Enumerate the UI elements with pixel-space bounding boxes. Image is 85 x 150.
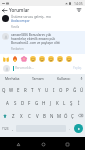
button[interactable]: U [43, 83, 50, 96]
button[interactable]: İ [75, 96, 82, 109]
button[interactable]: L [61, 96, 68, 109]
button[interactable]: Merhaba [0, 74, 25, 83]
button[interactable]: Q [0, 83, 8, 96]
staticText: Z [12, 113, 15, 119]
button[interactable]: Send [72, 122, 85, 135]
staticText: V [36, 113, 39, 119]
button[interactable]: Tamam [25, 74, 51, 83]
button[interactable]: , [10, 122, 15, 135]
button[interactable]: React [20, 55, 27, 62]
button[interactable]: Ö [62, 109, 69, 122]
button[interactable]: React [2, 55, 9, 62]
staticText: Pankartım [11, 47, 24, 51]
button[interactable]: Home [36, 138, 50, 150]
button[interactable]: Recents [60, 138, 74, 150]
button[interactable]: canacell456 Bonuslarını yük [0, 31, 85, 54]
button[interactable]: V [33, 109, 41, 122]
staticText: T [31, 87, 34, 93]
button[interactable]: S [11, 96, 19, 109]
staticText: E [17, 87, 20, 93]
button[interactable]: Kullanıcı [51, 74, 77, 83]
staticText: P [66, 87, 69, 93]
button[interactable]: Y [36, 83, 43, 96]
button[interactable]: I [50, 83, 57, 96]
button[interactable]: React [29, 55, 36, 62]
button[interactable]: K [54, 96, 61, 109]
staticText: D [21, 100, 25, 106]
staticText: Merhaba [5, 76, 20, 81]
button[interactable]: Üstüme sorucu gelmiş.. mo [0, 14, 85, 31]
button[interactable]: Sort [73, 6, 84, 14]
staticText: N [50, 113, 54, 119]
button[interactable]: React [47, 55, 54, 62]
staticText: R [24, 87, 27, 93]
staticText: Ğ [73, 87, 77, 93]
button[interactable]: W [8, 83, 15, 96]
button[interactable]: React [65, 55, 72, 62]
staticText: Ö [64, 113, 68, 119]
button[interactable]: ?123 [0, 122, 10, 135]
staticText: M [57, 113, 61, 119]
staticText: Bonushost2 .com ve paylaşın ciltti [11, 41, 61, 45]
staticText: S [14, 100, 17, 106]
staticText: Yanıtla [11, 25, 20, 29]
button[interactable]: T [29, 83, 36, 96]
staticText: Y [38, 87, 41, 93]
button[interactable]: Ç [69, 109, 76, 122]
staticText: J [50, 100, 52, 106]
button[interactable]: P [64, 83, 71, 96]
staticText: Ş [70, 100, 73, 106]
staticText: X [20, 113, 23, 119]
staticText: I [53, 87, 55, 93]
button[interactable]: M [55, 109, 62, 122]
button[interactable]: J [47, 96, 54, 109]
staticText: Q [2, 87, 6, 93]
button[interactable]: Ş [68, 96, 75, 109]
staticText: Tamam [32, 76, 44, 81]
staticText: #odacompor [11, 19, 30, 23]
staticText: Yorumlar [9, 7, 30, 13]
button[interactable]: Ğ [71, 83, 78, 96]
button[interactable]: Back [11, 138, 25, 150]
button[interactable]: R [22, 83, 29, 96]
button[interactable]: E [15, 83, 22, 96]
staticText: ?123 [2, 127, 9, 131]
staticText: K [56, 100, 59, 106]
button[interactable]: Shift [0, 109, 9, 122]
staticText: C [28, 113, 31, 119]
staticText: Kullanıcı [57, 76, 71, 81]
button[interactable]: N [48, 109, 55, 122]
button[interactable]: Back [0, 6, 9, 14]
staticText: Paylaş [73, 66, 82, 70]
button[interactable]: Z [9, 109, 17, 122]
staticText: , [12, 126, 13, 131]
button[interactable]: Voice input [77, 74, 85, 83]
button[interactable]: B [41, 109, 48, 122]
button[interactable]: O [57, 83, 64, 96]
button[interactable]: React [56, 55, 63, 62]
staticText: G [35, 100, 39, 106]
staticText: A [6, 100, 9, 106]
staticText: canacell456 Bonuslarını yük [11, 33, 52, 37]
staticText: B [43, 113, 46, 119]
button[interactable]: Ü [78, 83, 85, 96]
staticText: W [9, 87, 14, 93]
button[interactable]: React [38, 55, 45, 62]
button[interactable]: H [40, 96, 47, 109]
button[interactable]: A [3, 96, 11, 109]
staticText: Yorum ekle... [15, 66, 34, 70]
button[interactable]: F [26, 96, 33, 109]
button[interactable]: G [33, 96, 40, 109]
button[interactable]: Backspace [76, 109, 85, 122]
button[interactable]: D [19, 96, 26, 109]
staticText: hazırdırlar, ebimilk enazını pük [11, 37, 56, 41]
button[interactable]: C [25, 109, 33, 122]
staticText: . [69, 126, 70, 131]
staticText: 14:05 [74, 1, 83, 6]
button[interactable]: X [17, 109, 25, 122]
staticText: Ü [80, 87, 84, 93]
button[interactable]: React [11, 55, 18, 62]
staticText: Üstüme sorucu gelmiş.. mo [11, 15, 51, 19]
